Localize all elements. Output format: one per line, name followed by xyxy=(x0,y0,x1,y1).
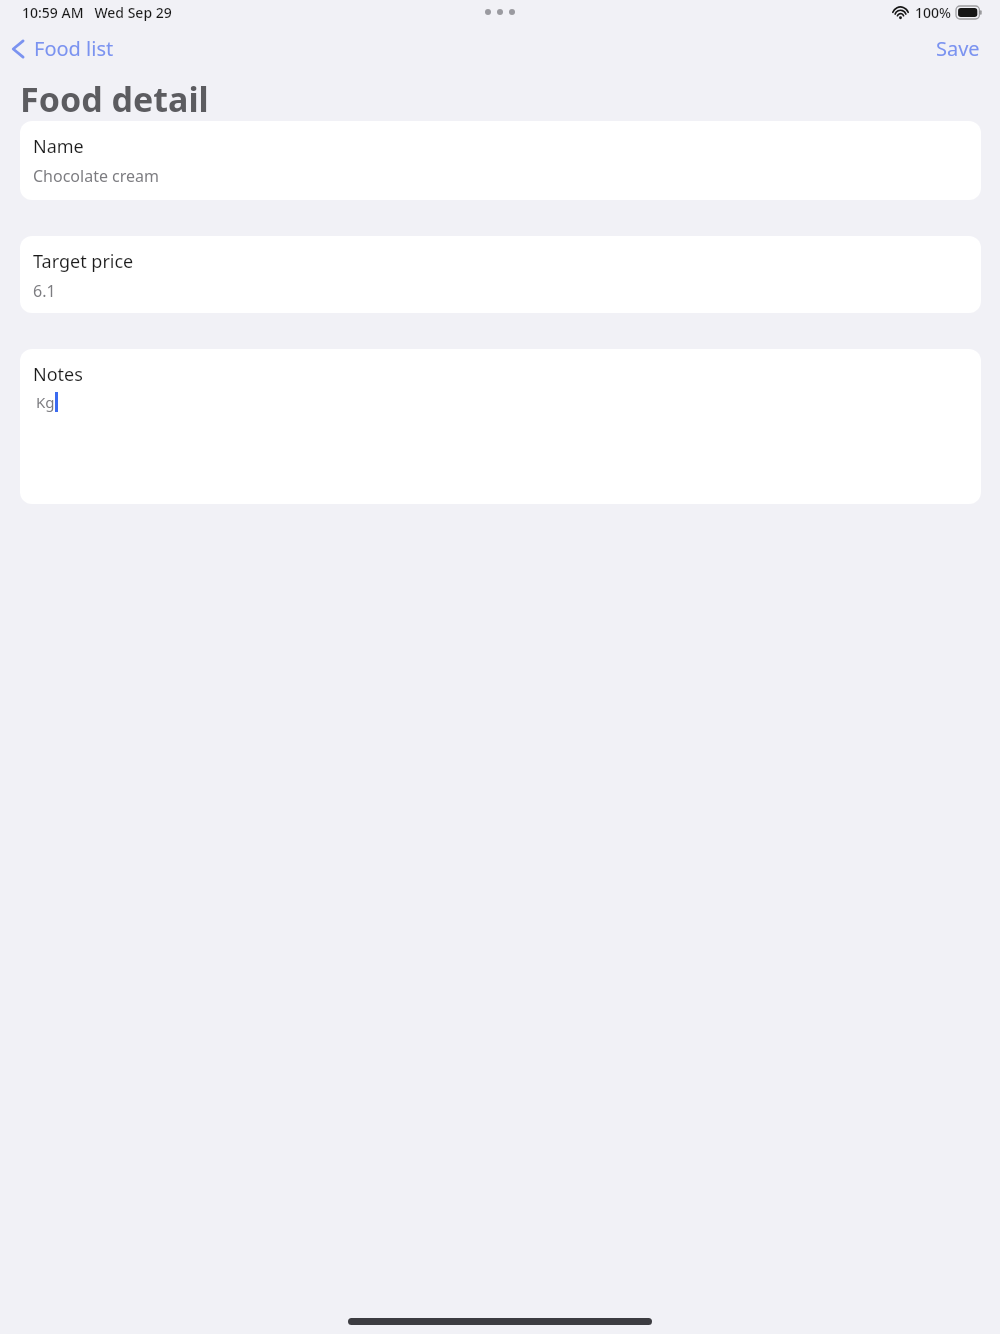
button[interactable]: Save xyxy=(930,29,986,68)
button[interactable]: Notes xyxy=(20,349,981,504)
staticText: 6.1 xyxy=(33,280,56,302)
staticText: 10:59 AM Wed Sep 29 xyxy=(22,3,172,22)
staticText: Food list xyxy=(34,35,114,62)
button[interactable]: Food list xyxy=(8,31,116,66)
staticText: Food detail xyxy=(20,76,209,122)
staticText: Name xyxy=(33,134,84,159)
staticText: 100% xyxy=(915,3,951,22)
staticText: Kg xyxy=(36,392,55,412)
staticText: Save xyxy=(936,35,980,62)
button[interactable]: Target price xyxy=(20,236,981,313)
staticText: Notes xyxy=(33,362,83,387)
staticText: Chocolate cream xyxy=(33,165,160,187)
button[interactable]: Name xyxy=(20,121,981,200)
staticText: Target price xyxy=(33,249,134,274)
